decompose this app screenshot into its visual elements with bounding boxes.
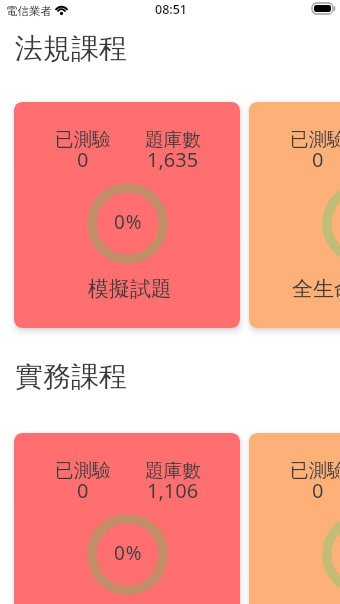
staticText: 已測驗 [55, 128, 111, 151]
button[interactable]: 已測驗 [249, 433, 340, 604]
staticText: 0% [114, 209, 143, 235]
button[interactable]: 已測驗 [249, 102, 340, 328]
staticText: 題庫數 [145, 459, 201, 482]
staticText: 實務課程 [15, 359, 127, 394]
staticText: 模擬試題 [88, 276, 172, 302]
staticText: 法規課程 [15, 31, 127, 66]
staticText: 1,106 [147, 477, 199, 504]
staticText: 題庫數 [145, 128, 201, 151]
button[interactable]: 已測驗 [14, 433, 240, 604]
staticText: 0 [312, 477, 324, 504]
staticText: 0 [312, 146, 324, 173]
staticText: 08:51 [155, 1, 188, 18]
button[interactable]: 已測驗 [14, 102, 240, 328]
staticText: 0 [77, 146, 89, 173]
staticText: 1,635 [147, 146, 199, 173]
staticText: 電信業者 [6, 4, 52, 18]
staticText: 已測驗 [55, 459, 111, 482]
staticText: 全生命週期規劃 [292, 276, 340, 302]
staticText: 已測驗 [290, 128, 340, 151]
staticText: 0 [77, 477, 89, 504]
staticText: 0% [114, 540, 143, 566]
staticText: 已測驗 [290, 459, 340, 482]
